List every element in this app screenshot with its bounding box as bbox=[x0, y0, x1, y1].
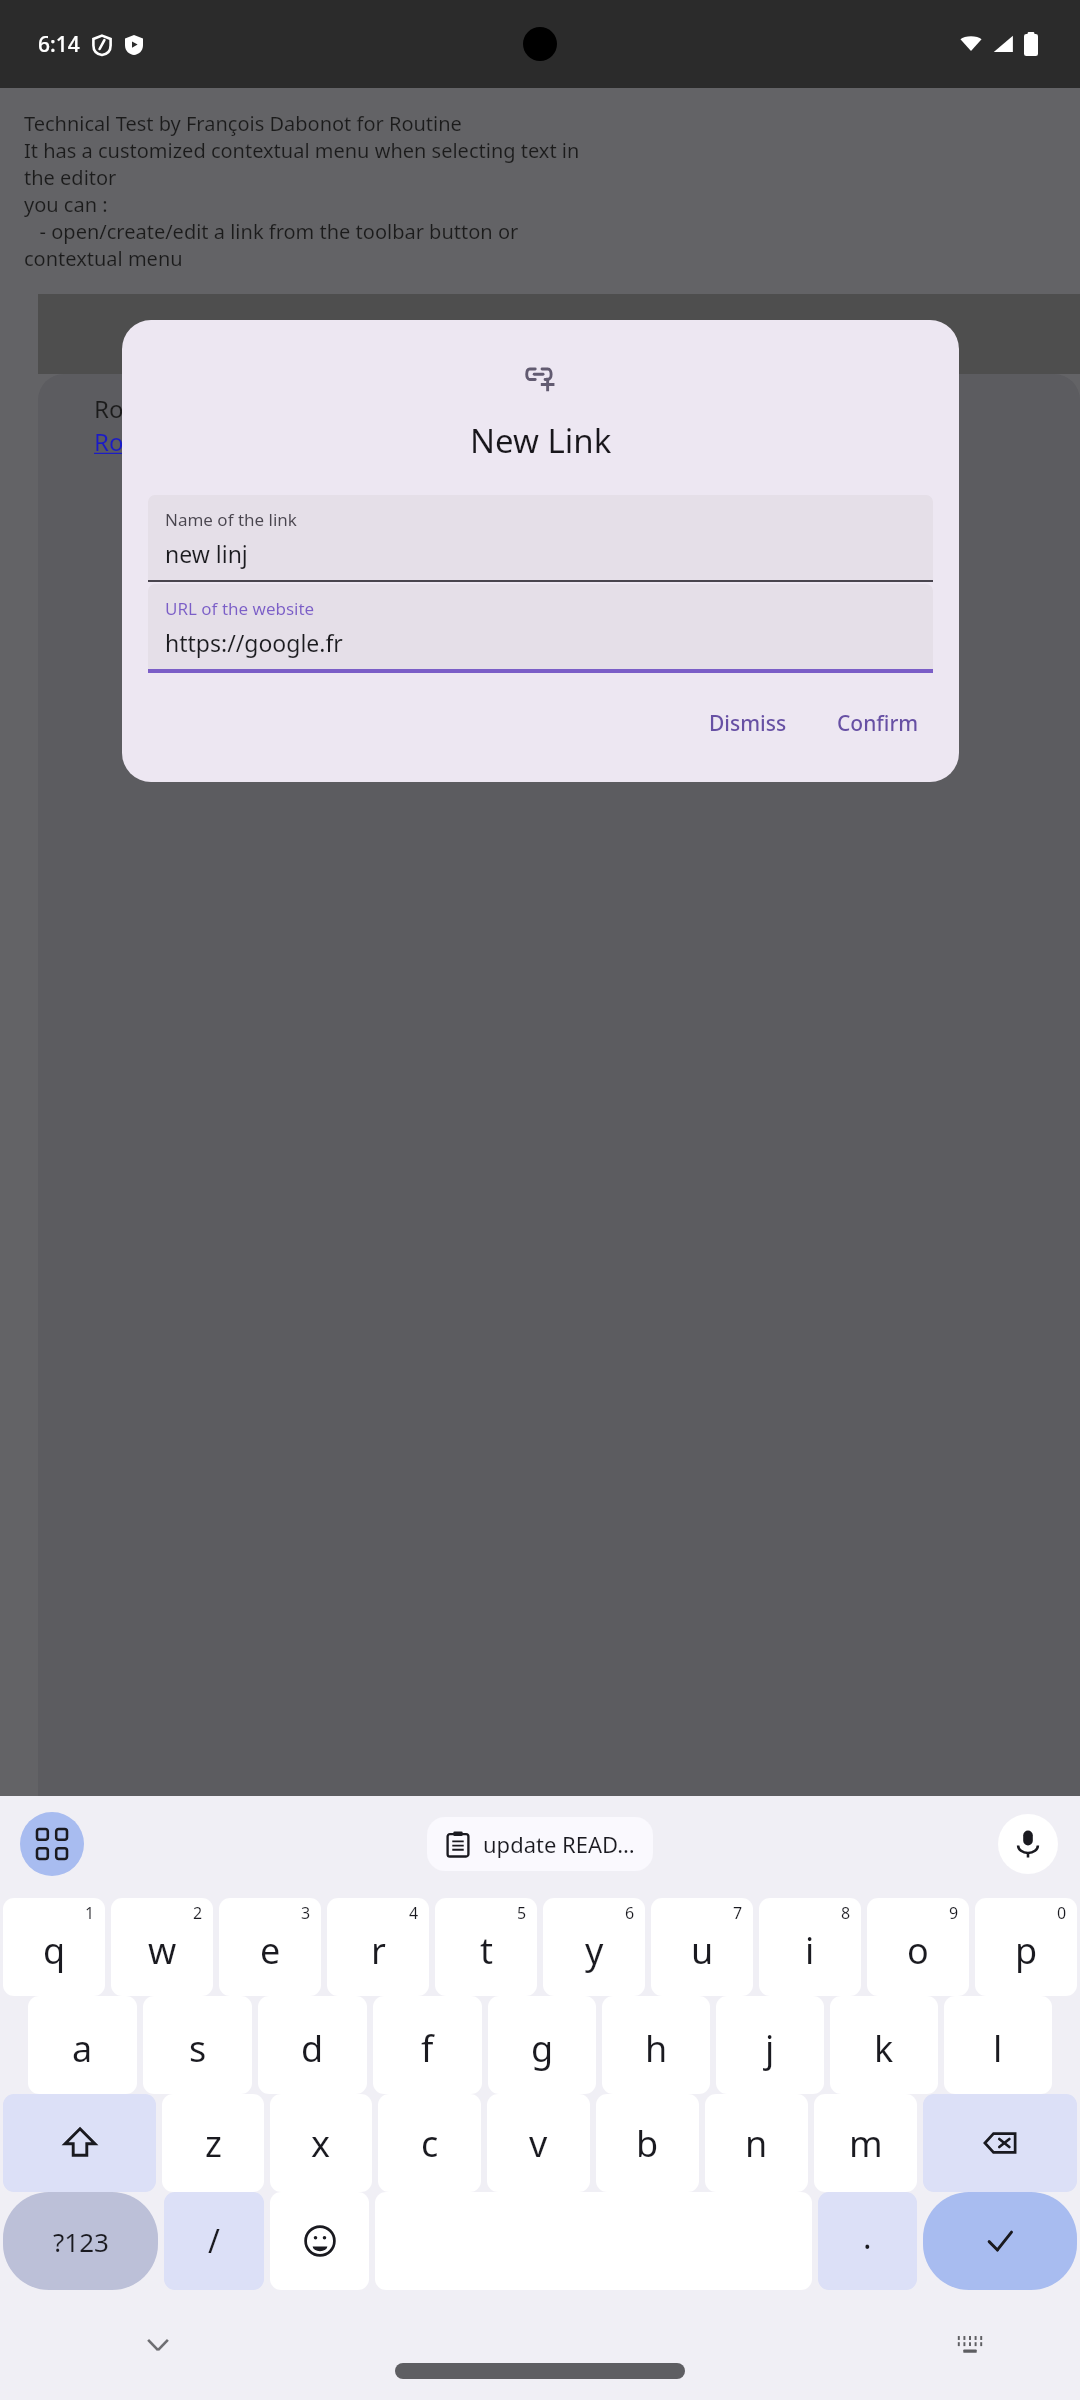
staticText: u bbox=[691, 1926, 714, 1975]
staticText: Technical Test by François Dabonot for R… bbox=[24, 110, 462, 137]
staticText: 6:14 bbox=[38, 30, 80, 59]
staticText: h bbox=[645, 2024, 668, 2073]
staticText: 3 bbox=[301, 1902, 311, 1924]
button[interactable]: c bbox=[378, 2094, 481, 2192]
button[interactable]: ?123 bbox=[3, 2192, 158, 2290]
button[interactable]: Dismiss bbox=[695, 699, 801, 748]
staticText: k bbox=[874, 2024, 894, 2073]
staticText: update READ… bbox=[483, 1829, 635, 1859]
button[interactable]: u bbox=[651, 1898, 753, 1996]
button[interactable]: y bbox=[543, 1898, 645, 1996]
staticText: - open/create/edit a link from the toolb… bbox=[24, 218, 519, 245]
button[interactable]: z bbox=[162, 2094, 264, 2192]
staticText: Confirm bbox=[837, 709, 919, 738]
button[interactable]: f bbox=[373, 1996, 482, 2094]
staticText: r bbox=[371, 1926, 386, 1975]
button[interactable]: j bbox=[716, 1996, 824, 2094]
button[interactable]: s bbox=[143, 1996, 252, 2094]
button[interactable]: i bbox=[759, 1898, 861, 1996]
staticText: z bbox=[205, 2119, 222, 2168]
button[interactable]: Hide keyboard bbox=[128, 2315, 188, 2375]
staticText: x bbox=[311, 2119, 331, 2168]
staticText: 8 bbox=[841, 1902, 851, 1924]
button[interactable]: g bbox=[488, 1996, 596, 2094]
staticText: p bbox=[1015, 1926, 1038, 1975]
button[interactable]: t bbox=[435, 1898, 537, 1996]
button[interactable]: Voice input bbox=[998, 1814, 1058, 1874]
button[interactable]: l bbox=[944, 1996, 1052, 2094]
staticText: y bbox=[585, 1926, 604, 1975]
button[interactable]: URL of the website bbox=[148, 584, 933, 673]
staticText: 0 bbox=[1057, 1902, 1067, 1924]
button[interactable]: q bbox=[3, 1898, 105, 1996]
staticText: n bbox=[745, 2119, 768, 2168]
staticText: . bbox=[863, 2215, 872, 2259]
button[interactable]: r bbox=[327, 1898, 429, 1996]
button[interactable]: Emoji bbox=[270, 2192, 369, 2290]
staticText: Routine bbox=[94, 425, 182, 458]
staticText: contextual menu bbox=[24, 245, 183, 272]
staticText: It has a customized contextual menu when… bbox=[24, 137, 580, 164]
staticText: 4 bbox=[409, 1902, 419, 1924]
staticText: new linj bbox=[165, 538, 248, 569]
button[interactable]: d bbox=[258, 1996, 367, 2094]
staticText: b bbox=[636, 2119, 659, 2168]
button[interactable]: o bbox=[867, 1898, 969, 1996]
staticText: a bbox=[72, 2024, 93, 2073]
button[interactable]: Change keyboard bbox=[940, 2315, 1000, 2375]
staticText: g bbox=[531, 2024, 554, 2073]
staticText: j bbox=[765, 2024, 775, 2073]
button[interactable]: Enter bbox=[923, 2192, 1077, 2290]
staticText: m bbox=[849, 2119, 883, 2168]
button[interactable]: p bbox=[975, 1898, 1077, 1996]
staticText: the editor bbox=[24, 164, 117, 191]
staticText: 1 bbox=[85, 1902, 95, 1924]
staticText: Dismiss bbox=[709, 709, 787, 738]
staticText: v bbox=[529, 2119, 548, 2168]
button[interactable]: x bbox=[270, 2094, 372, 2192]
button[interactable]: m bbox=[814, 2094, 917, 2192]
staticText: Name of the link bbox=[165, 508, 297, 531]
button[interactable]: n bbox=[705, 2094, 808, 2192]
staticText: f bbox=[421, 2024, 434, 2073]
button[interactable]: Confirm bbox=[823, 699, 933, 748]
button[interactable]: Keyboard toolbar bbox=[20, 1812, 84, 1876]
button[interactable]: Backspace bbox=[923, 2094, 1077, 2192]
staticText: URL of the website bbox=[165, 597, 315, 620]
staticText: q bbox=[43, 1926, 66, 1975]
button[interactable]: h bbox=[602, 1996, 710, 2094]
staticText: w bbox=[148, 1926, 177, 1975]
button[interactable]: Name of the link bbox=[148, 495, 933, 582]
staticText: / bbox=[208, 2219, 220, 2263]
staticText: e bbox=[260, 1926, 281, 1975]
button[interactable]: a bbox=[28, 1996, 137, 2094]
staticText: s bbox=[189, 2024, 207, 2073]
button[interactable]: v bbox=[487, 2094, 590, 2192]
staticText: t bbox=[480, 1926, 493, 1975]
staticText: ?123 bbox=[53, 2224, 109, 2259]
staticText: 9 bbox=[949, 1902, 959, 1924]
button[interactable]: e bbox=[219, 1898, 321, 1996]
button[interactable]: Shift bbox=[3, 2094, 156, 2192]
button[interactable]: update READ… bbox=[427, 1817, 653, 1871]
staticText: https://google.fr bbox=[165, 627, 343, 658]
staticText: o bbox=[907, 1926, 929, 1975]
button[interactable]: k bbox=[830, 1996, 938, 2094]
staticText: 2 bbox=[193, 1902, 203, 1924]
staticText: Routine bbox=[94, 392, 182, 425]
button[interactable]: / bbox=[164, 2192, 264, 2290]
staticText: 5 bbox=[517, 1902, 527, 1924]
button[interactable]: b bbox=[596, 2094, 699, 2192]
staticText: d bbox=[301, 2024, 324, 2073]
button[interactable]: w bbox=[111, 1898, 213, 1996]
staticText: you can : bbox=[24, 191, 108, 218]
staticText: New Link bbox=[470, 418, 612, 463]
staticText: 6 bbox=[625, 1902, 635, 1924]
staticText: l bbox=[993, 2024, 1003, 2073]
staticText: i bbox=[805, 1926, 815, 1975]
staticText: c bbox=[421, 2119, 439, 2168]
staticText: 7 bbox=[733, 1902, 743, 1924]
button[interactable]: . bbox=[818, 2192, 917, 2290]
